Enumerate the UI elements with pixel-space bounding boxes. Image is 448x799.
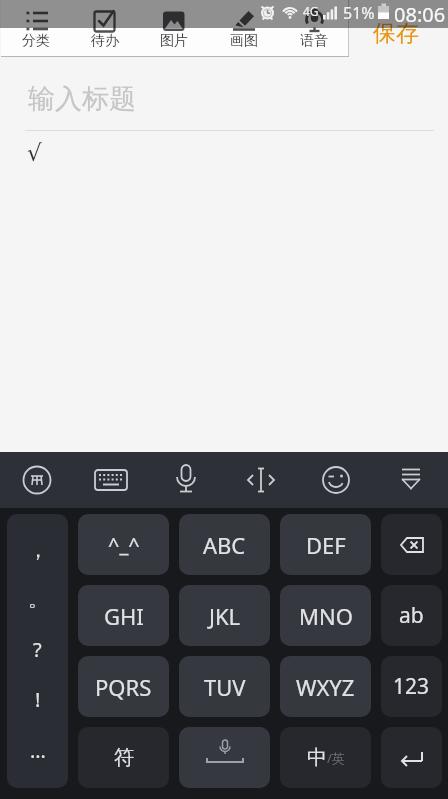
button[interactable]: PQRS xyxy=(78,656,169,717)
button[interactable] xyxy=(381,514,442,575)
staticText: 保存 xyxy=(373,19,419,48)
staticText: PQRS xyxy=(95,672,152,702)
staticText: 123 xyxy=(393,672,430,701)
button[interactable]: GHI xyxy=(78,585,169,646)
staticText: JKL xyxy=(209,601,241,631)
button[interactable]: 图片 xyxy=(139,0,209,57)
staticText: WXYZ xyxy=(296,672,355,702)
staticText: 图片 xyxy=(160,32,188,50)
staticText: ab xyxy=(399,601,424,630)
button[interactable]: 保存 xyxy=(356,13,436,53)
staticText: 51% xyxy=(343,2,375,24)
button[interactable]: JKL xyxy=(179,585,270,646)
button[interactable] xyxy=(223,452,298,508)
staticText: GHI xyxy=(104,601,144,631)
button[interactable]: TUV xyxy=(179,656,270,717)
button[interactable]: 待办 xyxy=(70,0,139,57)
staticText: √ xyxy=(27,140,42,167)
button[interactable]: 画图 xyxy=(209,0,279,57)
staticText: 4G xyxy=(303,3,319,19)
staticText: 。 xyxy=(28,587,48,612)
staticText: ! xyxy=(35,686,41,713)
staticText: 语音 xyxy=(300,32,328,50)
staticText: 08:06 xyxy=(394,1,446,28)
staticText: /英 xyxy=(327,749,345,767)
button[interactable]: ABC xyxy=(179,514,270,575)
button[interactable]: 分类 xyxy=(1,0,70,57)
staticText: ^_^ xyxy=(108,531,140,558)
button[interactable]: 中 xyxy=(280,727,371,788)
button[interactable]: ab xyxy=(381,585,442,646)
button[interactable]: WXYZ xyxy=(280,656,371,717)
button[interactable] xyxy=(74,452,148,508)
staticText: MNO xyxy=(299,601,353,631)
staticText: ， xyxy=(28,538,48,563)
staticText: DEF xyxy=(306,530,346,560)
staticText: ? xyxy=(33,636,42,663)
staticText: 中 xyxy=(307,745,327,770)
button[interactable] xyxy=(373,452,448,508)
staticText: 符 xyxy=(114,745,134,770)
button[interactable]: 符 xyxy=(78,727,169,788)
button[interactable] xyxy=(179,727,270,788)
staticText: 画图 xyxy=(230,32,258,50)
button[interactable] xyxy=(298,452,373,508)
button[interactable] xyxy=(0,452,74,508)
staticText: ABC xyxy=(203,530,246,560)
staticText: … xyxy=(30,737,46,764)
button[interactable]: DEF xyxy=(280,514,371,575)
button[interactable]: 123 xyxy=(381,656,442,717)
staticText: 待办 xyxy=(91,32,119,50)
button[interactable] xyxy=(381,727,442,788)
staticText: TUV xyxy=(204,672,246,702)
staticText: 输入标题 xyxy=(28,82,136,116)
staticText: 分类 xyxy=(22,32,50,50)
button[interactable]: ^_^ xyxy=(78,514,169,575)
button[interactable]: ， xyxy=(7,514,68,788)
button[interactable]: 语音 xyxy=(279,0,349,57)
button[interactable]: MNO xyxy=(280,585,371,646)
button[interactable] xyxy=(148,452,223,508)
